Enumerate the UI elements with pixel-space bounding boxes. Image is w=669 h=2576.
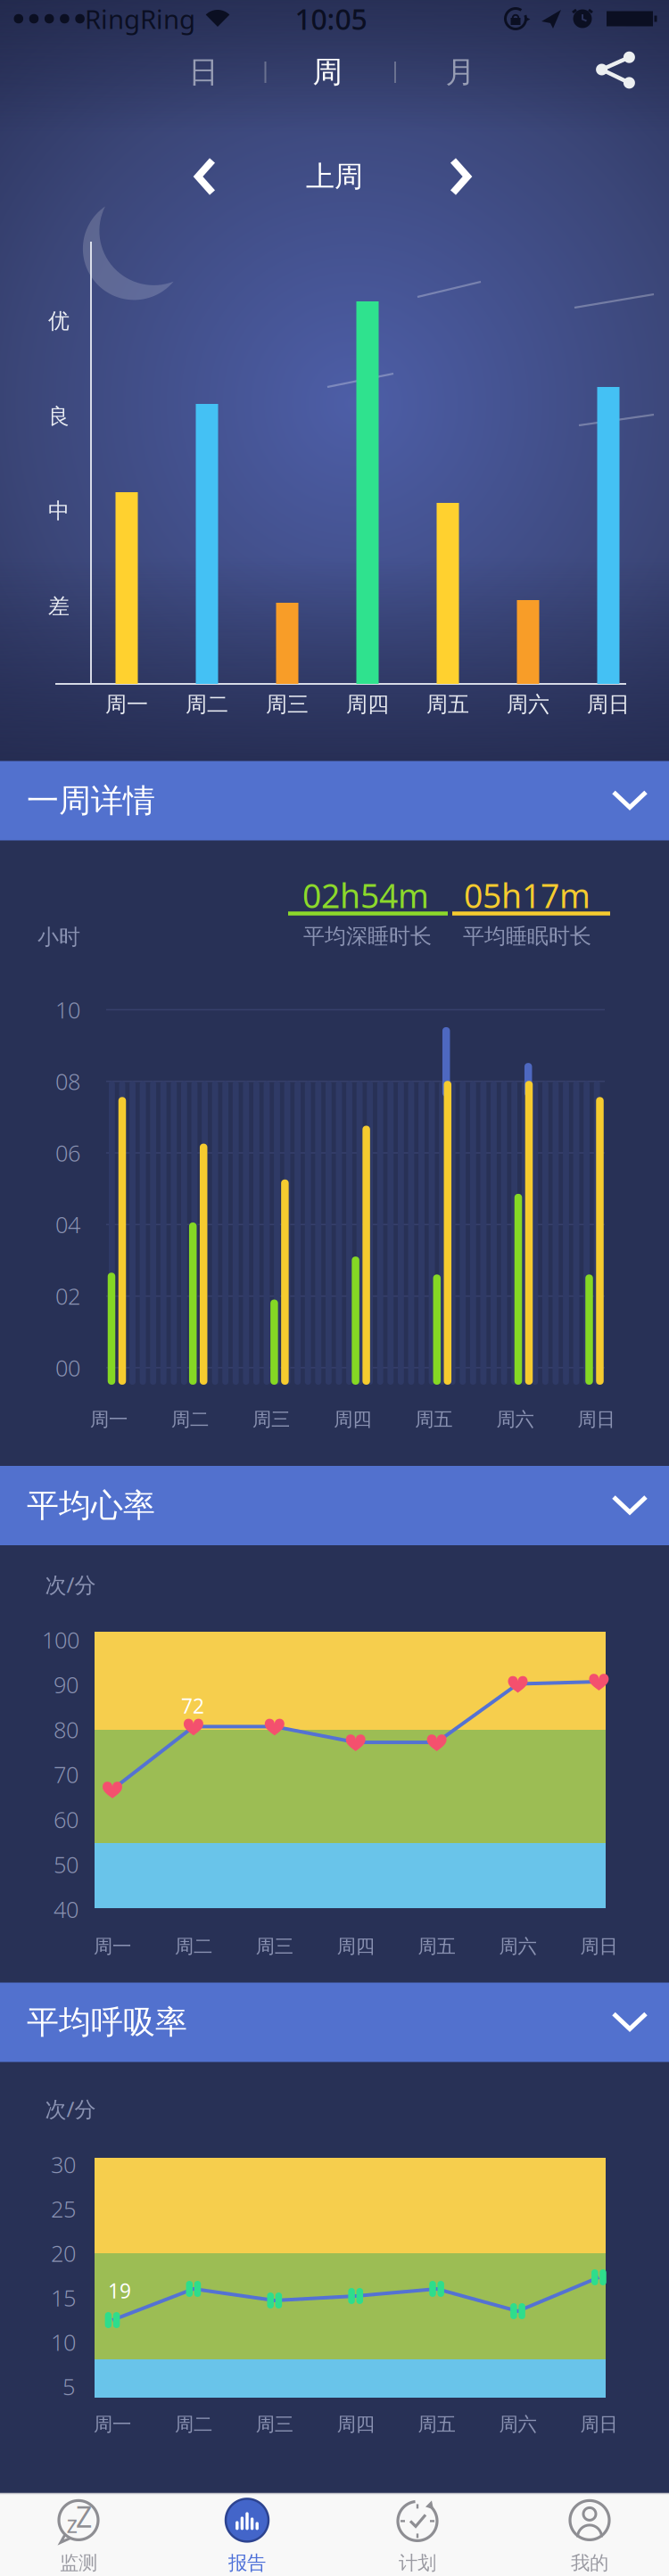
- staticText: 25: [51, 2194, 76, 2224]
- staticText: 次/分: [45, 1570, 96, 1599]
- button[interactable]: 平均呼吸率: [0, 1983, 669, 2062]
- staticText: 平均呼吸率: [27, 2003, 187, 2042]
- staticText: 优: [48, 308, 70, 334]
- staticText: RingRing: [85, 1, 195, 36]
- button[interactable]: 一周详情: [0, 761, 669, 840]
- button[interactable]: 月: [417, 43, 503, 102]
- staticText: 80: [54, 1714, 78, 1744]
- staticText: 周一: [90, 1408, 127, 1431]
- staticText: 5: [62, 2371, 75, 2401]
- staticText: 计划: [399, 2551, 436, 2575]
- staticText: 周日: [580, 2413, 618, 2436]
- staticText: 周日: [580, 1935, 618, 1958]
- staticText: 周二: [175, 2413, 212, 2436]
- staticText: 周二: [175, 1935, 212, 1958]
- staticText: 19: [108, 2277, 131, 2304]
- staticText: 10:05: [295, 0, 367, 38]
- staticText: 周六: [507, 691, 549, 718]
- staticText: 50: [54, 1849, 78, 1879]
- staticText: 15: [51, 2283, 76, 2313]
- button[interactable]: Share: [588, 42, 643, 97]
- staticText: 70: [54, 1759, 78, 1789]
- staticText: 00: [55, 1353, 80, 1383]
- staticText: 08: [55, 1066, 80, 1096]
- staticText: 日: [189, 54, 218, 90]
- button[interactable]: 计划: [337, 2495, 498, 2576]
- staticText: 月: [446, 54, 475, 90]
- staticText: 次/分: [45, 2095, 96, 2123]
- button[interactable]: 周: [285, 43, 370, 102]
- staticText: 上周: [306, 159, 363, 194]
- staticText: 周三: [253, 1408, 290, 1431]
- staticText: 周日: [587, 691, 630, 718]
- staticText: 小时: [37, 924, 80, 950]
- staticText: 周四: [337, 2413, 374, 2436]
- button[interactable]: 报告: [167, 2495, 327, 2576]
- button[interactable]: 我的: [509, 2495, 669, 2576]
- button[interactable]: Next week: [441, 157, 480, 196]
- staticText: 良: [48, 403, 70, 430]
- staticText: 平均深睡时长: [303, 923, 432, 949]
- staticText: 10: [51, 2327, 76, 2357]
- staticText: 02: [55, 1281, 80, 1311]
- staticText: 04: [55, 1209, 80, 1239]
- staticText: 30: [51, 2149, 76, 2179]
- staticText: 10: [55, 995, 80, 1025]
- staticText: 差: [48, 593, 70, 620]
- staticText: 周六: [499, 1935, 537, 1958]
- staticText: 我的: [571, 2551, 608, 2575]
- staticText: 40: [54, 1894, 78, 1924]
- staticText: 周日: [578, 1408, 615, 1431]
- staticText: 90: [54, 1670, 78, 1700]
- staticText: 周五: [415, 1408, 453, 1431]
- staticText: 60: [54, 1804, 78, 1834]
- staticText: 监测: [60, 2551, 97, 2575]
- staticText: 05h17m: [464, 873, 591, 917]
- staticText: 06: [55, 1138, 80, 1168]
- staticText: 周四: [334, 1408, 371, 1431]
- button[interactable]: Previous week: [186, 157, 225, 196]
- staticText: 周四: [346, 691, 389, 718]
- button[interactable]: z: [0, 2495, 159, 2576]
- staticText: 100: [42, 1625, 79, 1655]
- staticText: 20: [51, 2238, 76, 2268]
- staticText: 周一: [105, 691, 148, 718]
- staticText: 周六: [496, 1408, 534, 1431]
- staticText: 周三: [256, 1935, 293, 1958]
- staticText: 周三: [256, 2413, 293, 2436]
- staticText: 周二: [186, 691, 228, 718]
- staticText: Z: [76, 2498, 92, 2536]
- staticText: 周二: [171, 1408, 209, 1431]
- staticText: 周: [313, 54, 342, 90]
- button[interactable]: 日: [161, 43, 246, 102]
- staticText: 周三: [266, 691, 309, 718]
- staticText: 周六: [499, 2413, 537, 2436]
- staticText: 周四: [337, 1935, 374, 1958]
- staticText: 周五: [418, 2413, 455, 2436]
- button[interactable]: 平均心率: [0, 1466, 669, 1545]
- staticText: 02h54m: [302, 873, 429, 917]
- staticText: 平均睡眠时长: [463, 923, 591, 949]
- staticText: 周五: [426, 691, 469, 718]
- staticText: z: [66, 2508, 78, 2540]
- staticText: 平均心率: [27, 1486, 155, 1525]
- staticText: 一周详情: [27, 781, 155, 820]
- staticText: 周一: [94, 2413, 131, 2436]
- staticText: 72: [181, 1692, 204, 1719]
- staticText: 周一: [94, 1935, 131, 1958]
- staticText: 周五: [418, 1935, 455, 1958]
- staticText: 报告: [228, 2551, 266, 2575]
- staticText: 中: [48, 498, 70, 524]
